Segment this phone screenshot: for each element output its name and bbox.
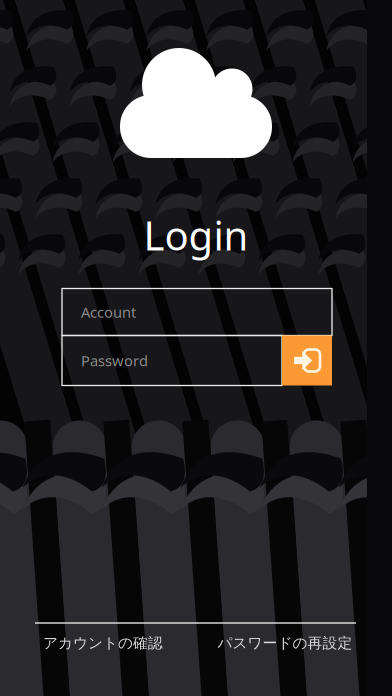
staticText: Password — [81, 351, 148, 370]
button[interactable]: アカウントの確認 — [38, 631, 168, 655]
staticText: パスワードの再設定 — [217, 634, 352, 652]
button[interactable]: Sign in — [282, 335, 332, 385]
staticText: Account — [81, 302, 136, 322]
button[interactable]: パスワードの再設定 — [214, 631, 356, 655]
staticText: アカウントの確認 — [43, 634, 163, 652]
staticText: Login — [143, 208, 248, 261]
